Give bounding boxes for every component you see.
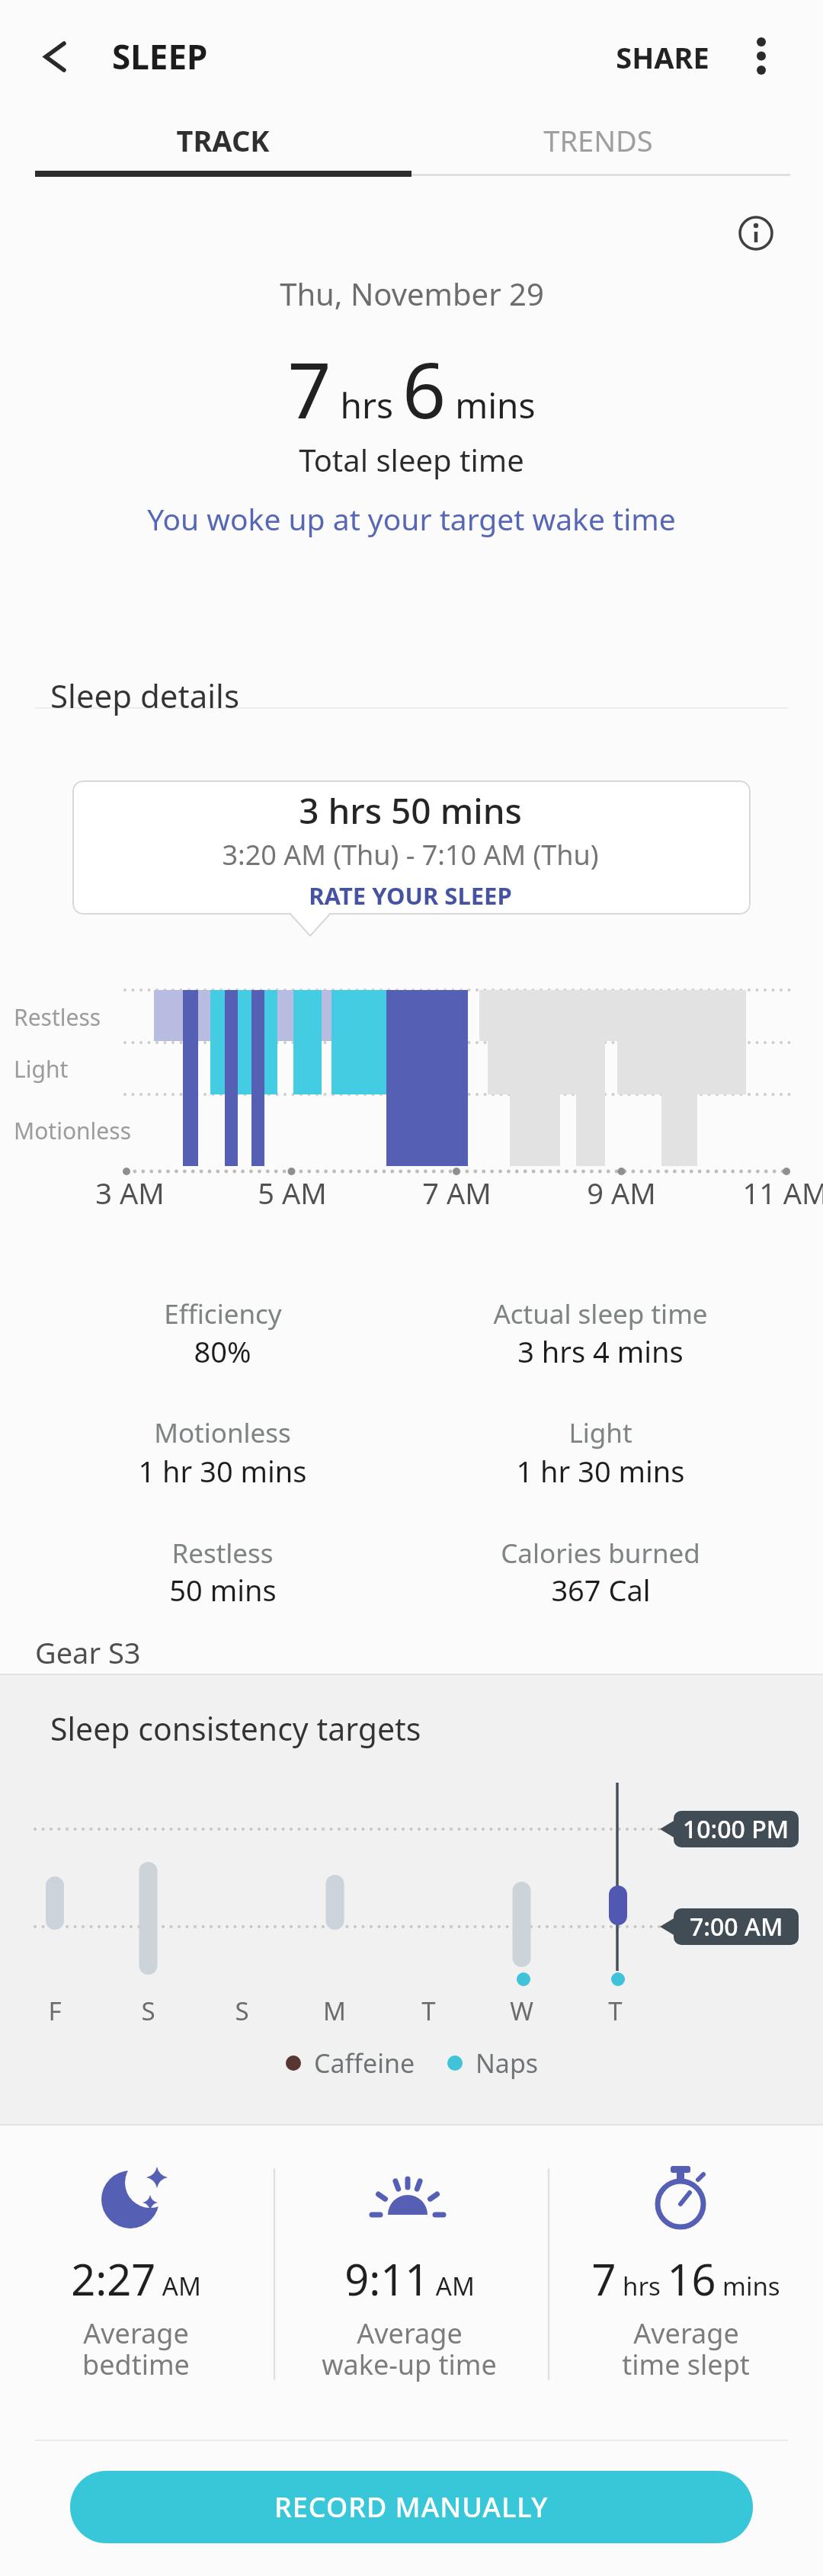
staticText: W — [510, 1994, 533, 2028]
staticText: Total sleep time — [299, 439, 524, 480]
button[interactable] — [732, 209, 780, 258]
staticText: Calories burned — [501, 1535, 700, 1572]
staticText: 10:00 PM — [683, 1812, 789, 1846]
staticText: Thu, November 29 — [280, 273, 544, 314]
staticText: Sleep details — [50, 674, 240, 717]
staticText: 7 hrs 16 mins — [591, 2250, 780, 2308]
staticText: 3 AM — [95, 1173, 165, 1213]
staticText: You woke up at your target wake time — [147, 498, 676, 539]
staticText: RECORD MANUALLY — [274, 2488, 549, 2526]
staticText: 3 hrs 50 mins — [299, 787, 522, 835]
staticText: 1 hr 30 mins — [516, 1451, 685, 1491]
staticText: 80% — [194, 1331, 251, 1371]
staticText: F — [48, 1994, 62, 2028]
staticText: TRACK — [176, 120, 270, 160]
staticText: Motionless — [14, 1115, 132, 1146]
staticText: 7:00 AM — [690, 1910, 783, 1943]
staticText: bedtime — [82, 2346, 190, 2383]
staticText: 2:27 AM — [71, 2250, 201, 2308]
button[interactable]: TRENDS — [255, 95, 823, 186]
staticText: S — [141, 1994, 155, 2028]
staticText: Light — [568, 1415, 632, 1451]
staticText: Gear S3 — [35, 1632, 141, 1672]
staticText: 1 hr 30 mins — [138, 1451, 307, 1491]
staticText: Sleep consistency targets — [50, 1707, 421, 1750]
staticText: 9:11 AM — [344, 2250, 475, 2308]
staticText: 7 hrs 6 mins — [287, 337, 536, 428]
staticText: TRENDS — [543, 120, 653, 160]
button[interactable]: RATE YOUR SLEEP — [67, 850, 753, 941]
button[interactable] — [30, 30, 84, 84]
staticText: Motionless — [154, 1415, 291, 1451]
staticText: SLEEP — [112, 34, 208, 79]
button[interactable]: SHARE — [319, 11, 823, 103]
staticText: SHARE — [616, 37, 709, 77]
staticText: Efficiency — [164, 1296, 282, 1332]
staticText: Average — [83, 2315, 189, 2352]
staticText: 3:20 AM (Thu) - 7:10 AM (Thu) — [222, 836, 599, 873]
staticText: Actual sleep time — [493, 1296, 708, 1332]
staticText: RATE YOUR SLEEP — [309, 879, 512, 912]
staticText: 9 AM — [587, 1173, 656, 1213]
staticText: Average — [633, 2315, 739, 2352]
staticText: Light — [14, 1053, 69, 1085]
staticText: S — [235, 1994, 249, 2028]
staticText: 5 AM — [258, 1173, 327, 1213]
staticText: M — [323, 1994, 346, 2028]
button[interactable]: RECORD MANUALLY — [70, 2471, 753, 2543]
staticText: 11 AM — [742, 1173, 823, 1213]
button[interactable] — [732, 27, 791, 88]
staticText: Caffeine — [314, 2046, 415, 2081]
button[interactable]: TRACK — [0, 95, 565, 186]
staticText: Restless — [171, 1535, 274, 1572]
staticText: wake-up time — [322, 2346, 497, 2383]
staticText: Average — [357, 2315, 463, 2352]
staticText: Restless — [14, 1001, 101, 1033]
staticText: T — [421, 1994, 436, 2028]
staticText: 367 Cal — [551, 1570, 651, 1610]
staticText: 50 mins — [169, 1570, 277, 1610]
staticText: time slept — [622, 2346, 750, 2383]
staticText: 7 AM — [422, 1173, 492, 1213]
staticText: T — [608, 1994, 623, 2028]
staticText: Naps — [476, 2046, 539, 2081]
staticText: 3 hrs 4 mins — [517, 1331, 684, 1371]
